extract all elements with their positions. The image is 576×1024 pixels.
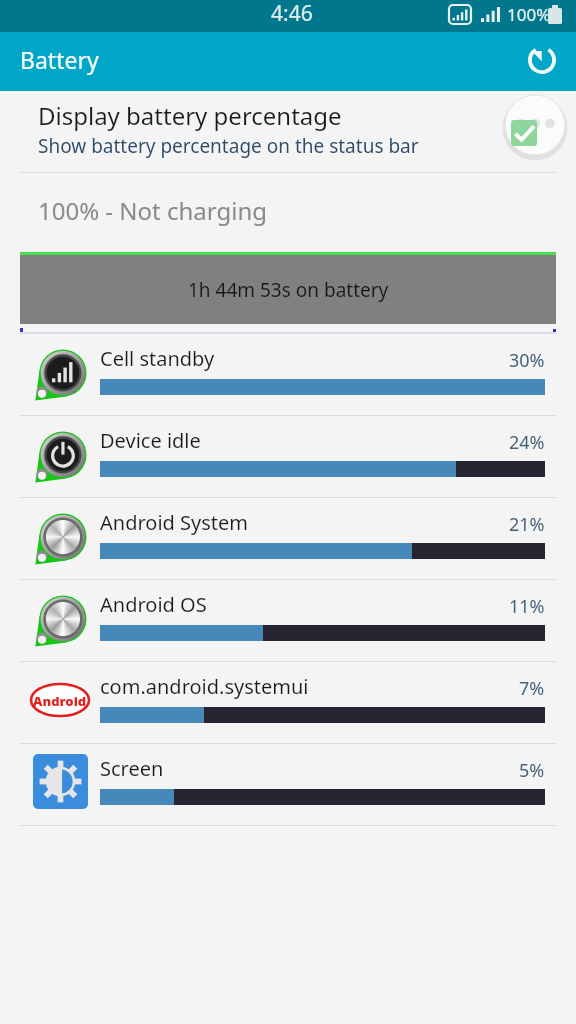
button[interactable]: Display battery percentage — [0, 93, 576, 172]
staticText: Android OS — [100, 591, 509, 618]
staticText: 30% — [509, 348, 545, 373]
staticText: Show battery percentage on the status ba… — [38, 133, 419, 159]
staticText: 21% — [509, 512, 545, 537]
staticText: 7% — [519, 676, 545, 701]
staticText: Android System — [100, 509, 509, 536]
staticText: Device idle — [100, 427, 509, 454]
staticText: Display battery percentage — [38, 99, 342, 132]
staticText: Screen — [100, 755, 519, 782]
button[interactable]: Android System — [0, 498, 576, 579]
staticText: Android — [33, 692, 87, 710]
staticText: 4:46 — [271, 0, 313, 28]
staticText: com.android.systemui — [100, 673, 519, 700]
staticText: 11% — [509, 594, 545, 619]
staticText: 5% — [519, 758, 545, 783]
staticText: 100% - Not charging — [38, 194, 268, 227]
button[interactable]: Refresh — [519, 33, 576, 90]
button[interactable]: Screen — [0, 744, 576, 825]
staticText: 24% — [509, 430, 545, 455]
button[interactable]: Android — [0, 662, 576, 743]
staticText: Battery — [20, 44, 99, 75]
button[interactable]: Android OS — [0, 580, 576, 661]
button[interactable]: Device idle — [0, 416, 576, 497]
staticText: 1h 44m 53s on battery — [188, 277, 389, 303]
button[interactable]: Cell standby — [0, 334, 576, 415]
button[interactable]: Display battery percentage checkbox — [497, 99, 565, 167]
staticText: Cell standby — [100, 345, 509, 372]
staticText: 100% — [507, 3, 551, 26]
